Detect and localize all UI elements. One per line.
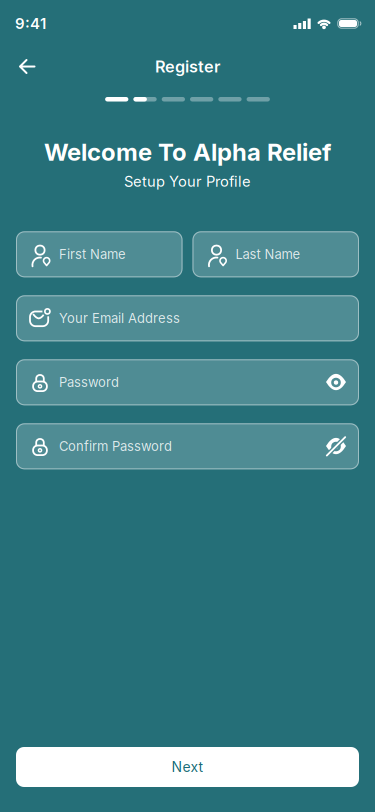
button[interactable]: Back xyxy=(0,48,38,84)
button[interactable]: Password xyxy=(16,359,359,405)
staticText: Next xyxy=(171,758,203,775)
button[interactable]: Hide password xyxy=(324,434,348,458)
staticText: Welcome To Alpha Relief xyxy=(44,137,331,166)
staticText: Password xyxy=(59,374,119,390)
staticText: Your Email Address xyxy=(59,310,180,326)
button[interactable]: Your Email Address xyxy=(16,295,359,341)
staticText: Confirm Password xyxy=(59,438,172,454)
button[interactable]: Confirm Password xyxy=(16,423,359,469)
button[interactable]: Next xyxy=(16,747,359,787)
button[interactable]: Last Name xyxy=(192,231,359,277)
staticText: First Name xyxy=(59,246,126,262)
button[interactable]: First Name xyxy=(16,231,182,277)
staticText: Register xyxy=(155,57,220,76)
staticText: Setup Your Profile xyxy=(124,172,251,190)
staticText: 9:41 xyxy=(15,14,46,32)
staticText: Last Name xyxy=(235,246,300,262)
button[interactable]: Show password xyxy=(324,370,348,394)
